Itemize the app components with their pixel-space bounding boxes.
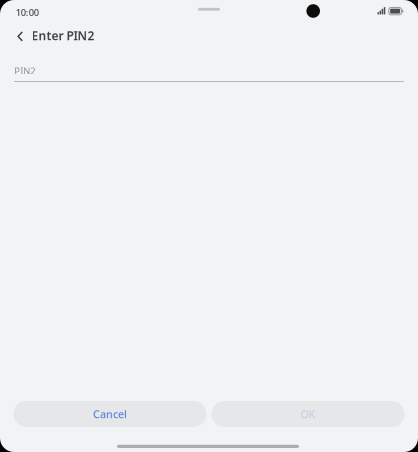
staticText: Cancel — [93, 407, 127, 421]
button[interactable]: OK — [211, 401, 404, 427]
button[interactable]: PIN2 — [14, 48, 404, 82]
staticText: 10:00 — [16, 6, 39, 19]
button[interactable]: Cancel — [13, 401, 206, 427]
staticText: Enter PIN2 — [32, 28, 95, 43]
button[interactable]: Back — [10, 25, 30, 47]
staticText: PIN2 — [14, 65, 35, 77]
staticText: OK — [300, 407, 315, 421]
